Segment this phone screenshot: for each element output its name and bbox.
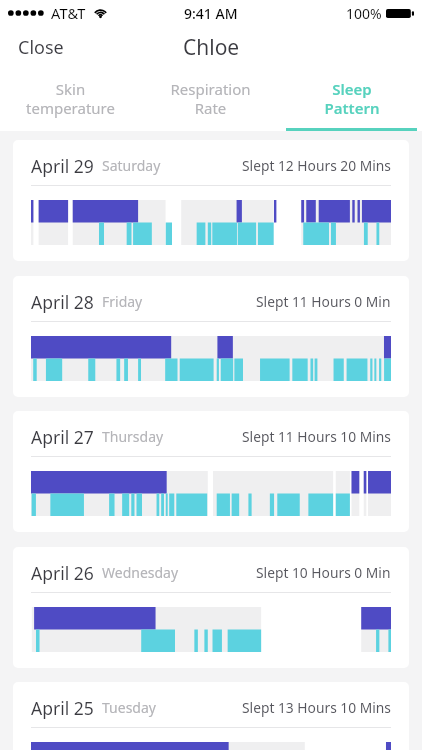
staticText: April 25 — [31, 696, 94, 720]
button[interactable]: April 28 — [13, 276, 409, 397]
button[interactable]: April 25 — [13, 682, 409, 750]
button[interactable]: April 29 — [13, 140, 409, 261]
staticText: 9:41 AM — [184, 4, 238, 23]
staticText: Close — [18, 35, 64, 60]
staticText: Skin temperature — [26, 79, 115, 118]
staticText: Respiration Rate — [170, 79, 251, 118]
staticText: Saturday — [102, 156, 161, 175]
staticText: 100% — [346, 4, 382, 23]
staticText: Wednesday — [102, 563, 179, 582]
button[interactable]: Respiration Rate — [140, 72, 281, 131]
button[interactable]: April 26 — [13, 547, 409, 668]
button[interactable]: Sleep Pattern — [281, 72, 422, 131]
staticText: Slept 11 Hours 0 Min — [256, 292, 391, 311]
staticText: Tuesday — [102, 698, 156, 717]
staticText: Friday — [102, 292, 143, 311]
staticText: April 26 — [31, 561, 94, 585]
staticText: April 27 — [31, 425, 94, 449]
button[interactable]: Close — [0, 25, 82, 70]
staticText: April 28 — [31, 290, 94, 314]
button[interactable]: Skin temperature — [0, 72, 140, 131]
staticText: April 29 — [31, 154, 94, 178]
staticText: Thursday — [102, 427, 164, 446]
staticText: Sleep Pattern — [324, 79, 380, 118]
staticText: Slept 11 Hours 10 Mins — [242, 427, 391, 446]
staticText: Chloe — [183, 33, 240, 62]
button[interactable]: April 27 — [13, 411, 409, 532]
staticText: AT&T — [51, 3, 86, 23]
staticText: Slept 13 Hours 10 Mins — [242, 698, 391, 717]
staticText: Slept 12 Hours 20 Mins — [242, 156, 391, 175]
staticText: Slept 10 Hours 0 Min — [256, 563, 391, 582]
